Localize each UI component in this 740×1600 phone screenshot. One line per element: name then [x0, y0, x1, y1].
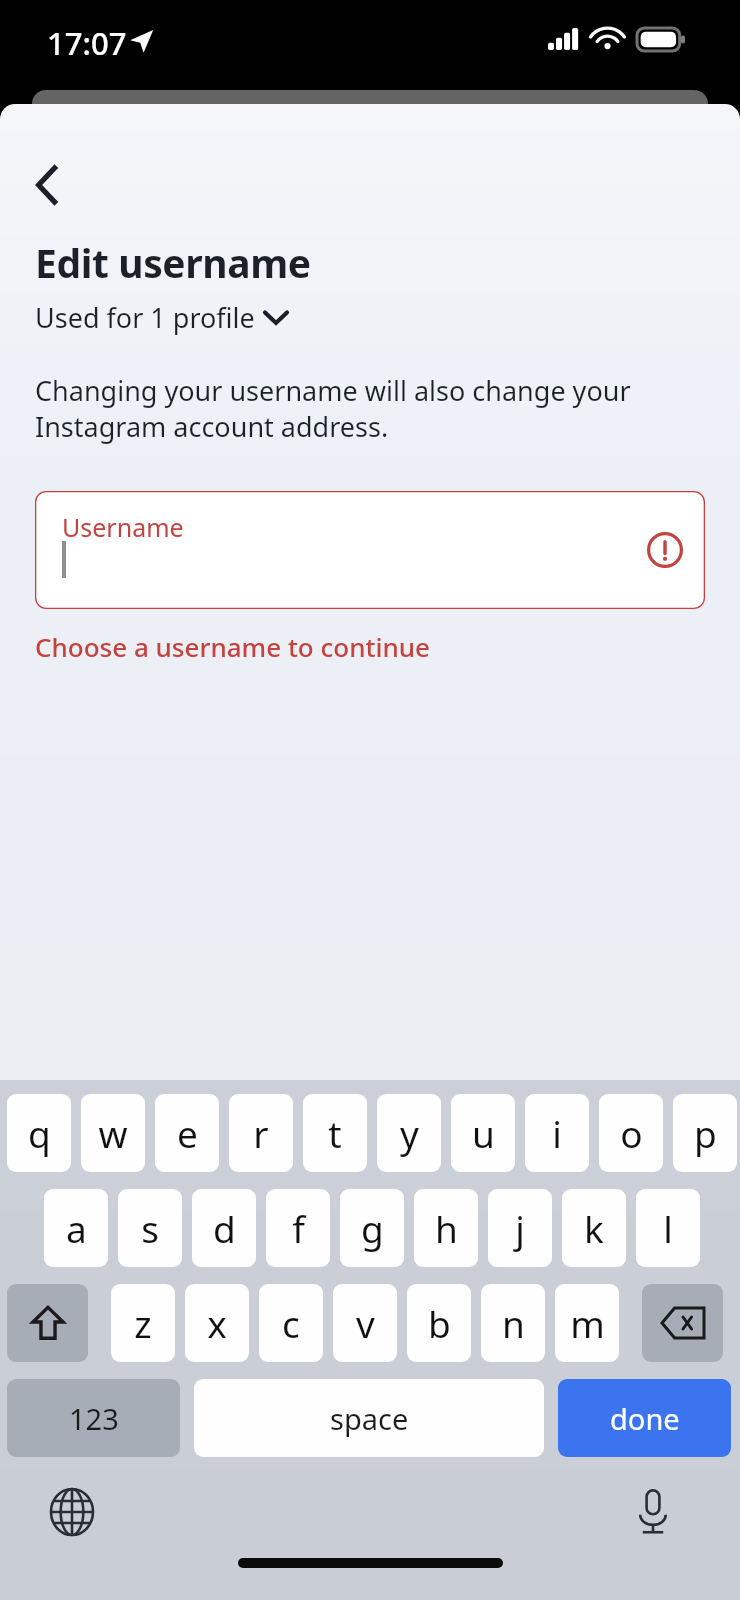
button[interactable]: Change keyboard	[40, 1480, 104, 1544]
staticText: z	[134, 1298, 152, 1348]
staticText: b	[428, 1298, 451, 1348]
staticText: a	[66, 1203, 87, 1253]
button[interactable]: o	[599, 1094, 663, 1172]
button[interactable]: Username	[35, 491, 705, 609]
staticText: p	[694, 1108, 717, 1158]
button[interactable]: h	[414, 1189, 478, 1267]
button[interactable]: n	[481, 1284, 545, 1362]
staticText: x	[207, 1298, 227, 1348]
button[interactable]: Dictate	[621, 1480, 685, 1544]
button[interactable]: w	[81, 1094, 145, 1172]
staticText: 123	[69, 1399, 119, 1438]
staticText: j	[515, 1203, 525, 1253]
staticText: s	[141, 1203, 159, 1253]
staticText: Choose a username to continue	[35, 629, 430, 664]
staticText: done	[610, 1399, 680, 1438]
staticText: t	[328, 1108, 342, 1158]
button[interactable]: i	[525, 1094, 589, 1172]
staticText: o	[620, 1108, 643, 1158]
button[interactable]: c	[259, 1284, 323, 1362]
button[interactable]: l	[636, 1189, 700, 1267]
button[interactable]: g	[340, 1189, 404, 1267]
staticText: q	[28, 1108, 51, 1158]
button[interactable]: space	[194, 1379, 544, 1457]
staticText: n	[502, 1298, 525, 1348]
button[interactable]: b	[407, 1284, 471, 1362]
staticText: Changing your username will also change …	[35, 372, 631, 445]
button[interactable]: z	[111, 1284, 175, 1362]
staticText: 17:07	[47, 22, 127, 64]
button[interactable]: Backspace	[642, 1284, 723, 1362]
button[interactable]: Used for 1 profile	[35, 299, 287, 336]
button[interactable]: 123	[7, 1379, 180, 1457]
staticText: h	[435, 1203, 458, 1253]
staticText: d	[213, 1203, 236, 1253]
staticText: w	[98, 1108, 128, 1158]
staticText: f	[292, 1203, 305, 1253]
staticText: m	[570, 1298, 605, 1348]
staticText: v	[356, 1298, 375, 1348]
staticText: Username	[62, 510, 184, 544]
button[interactable]: k	[562, 1189, 626, 1267]
button[interactable]: j	[488, 1189, 552, 1267]
button[interactable]: Shift	[7, 1284, 88, 1362]
staticText: l	[663, 1203, 673, 1253]
button[interactable]: t	[303, 1094, 367, 1172]
staticText: g	[361, 1203, 384, 1253]
staticText: Used for 1 profile	[35, 299, 255, 336]
button[interactable]: y	[377, 1094, 441, 1172]
button[interactable]: r	[229, 1094, 293, 1172]
button[interactable]: u	[451, 1094, 515, 1172]
button[interactable]: a	[44, 1189, 108, 1267]
staticText: i	[552, 1108, 562, 1158]
button[interactable]: m	[555, 1284, 619, 1362]
button[interactable]: s	[118, 1189, 182, 1267]
staticText: r	[253, 1108, 269, 1158]
button[interactable]: e	[155, 1094, 219, 1172]
staticText: Edit username	[35, 236, 311, 289]
button[interactable]: d	[192, 1189, 256, 1267]
staticText: u	[472, 1108, 495, 1158]
button[interactable]: done	[558, 1379, 731, 1457]
button[interactable]: f	[266, 1189, 330, 1267]
staticText: y	[400, 1108, 419, 1158]
button[interactable]: q	[7, 1094, 71, 1172]
staticText: c	[282, 1298, 300, 1348]
button[interactable]: Back	[18, 156, 76, 214]
button[interactable]: p	[673, 1094, 737, 1172]
staticText: space	[330, 1399, 409, 1438]
staticText: k	[584, 1203, 604, 1253]
button[interactable]: v	[333, 1284, 397, 1362]
staticText: e	[177, 1108, 198, 1158]
button[interactable]: x	[185, 1284, 249, 1362]
